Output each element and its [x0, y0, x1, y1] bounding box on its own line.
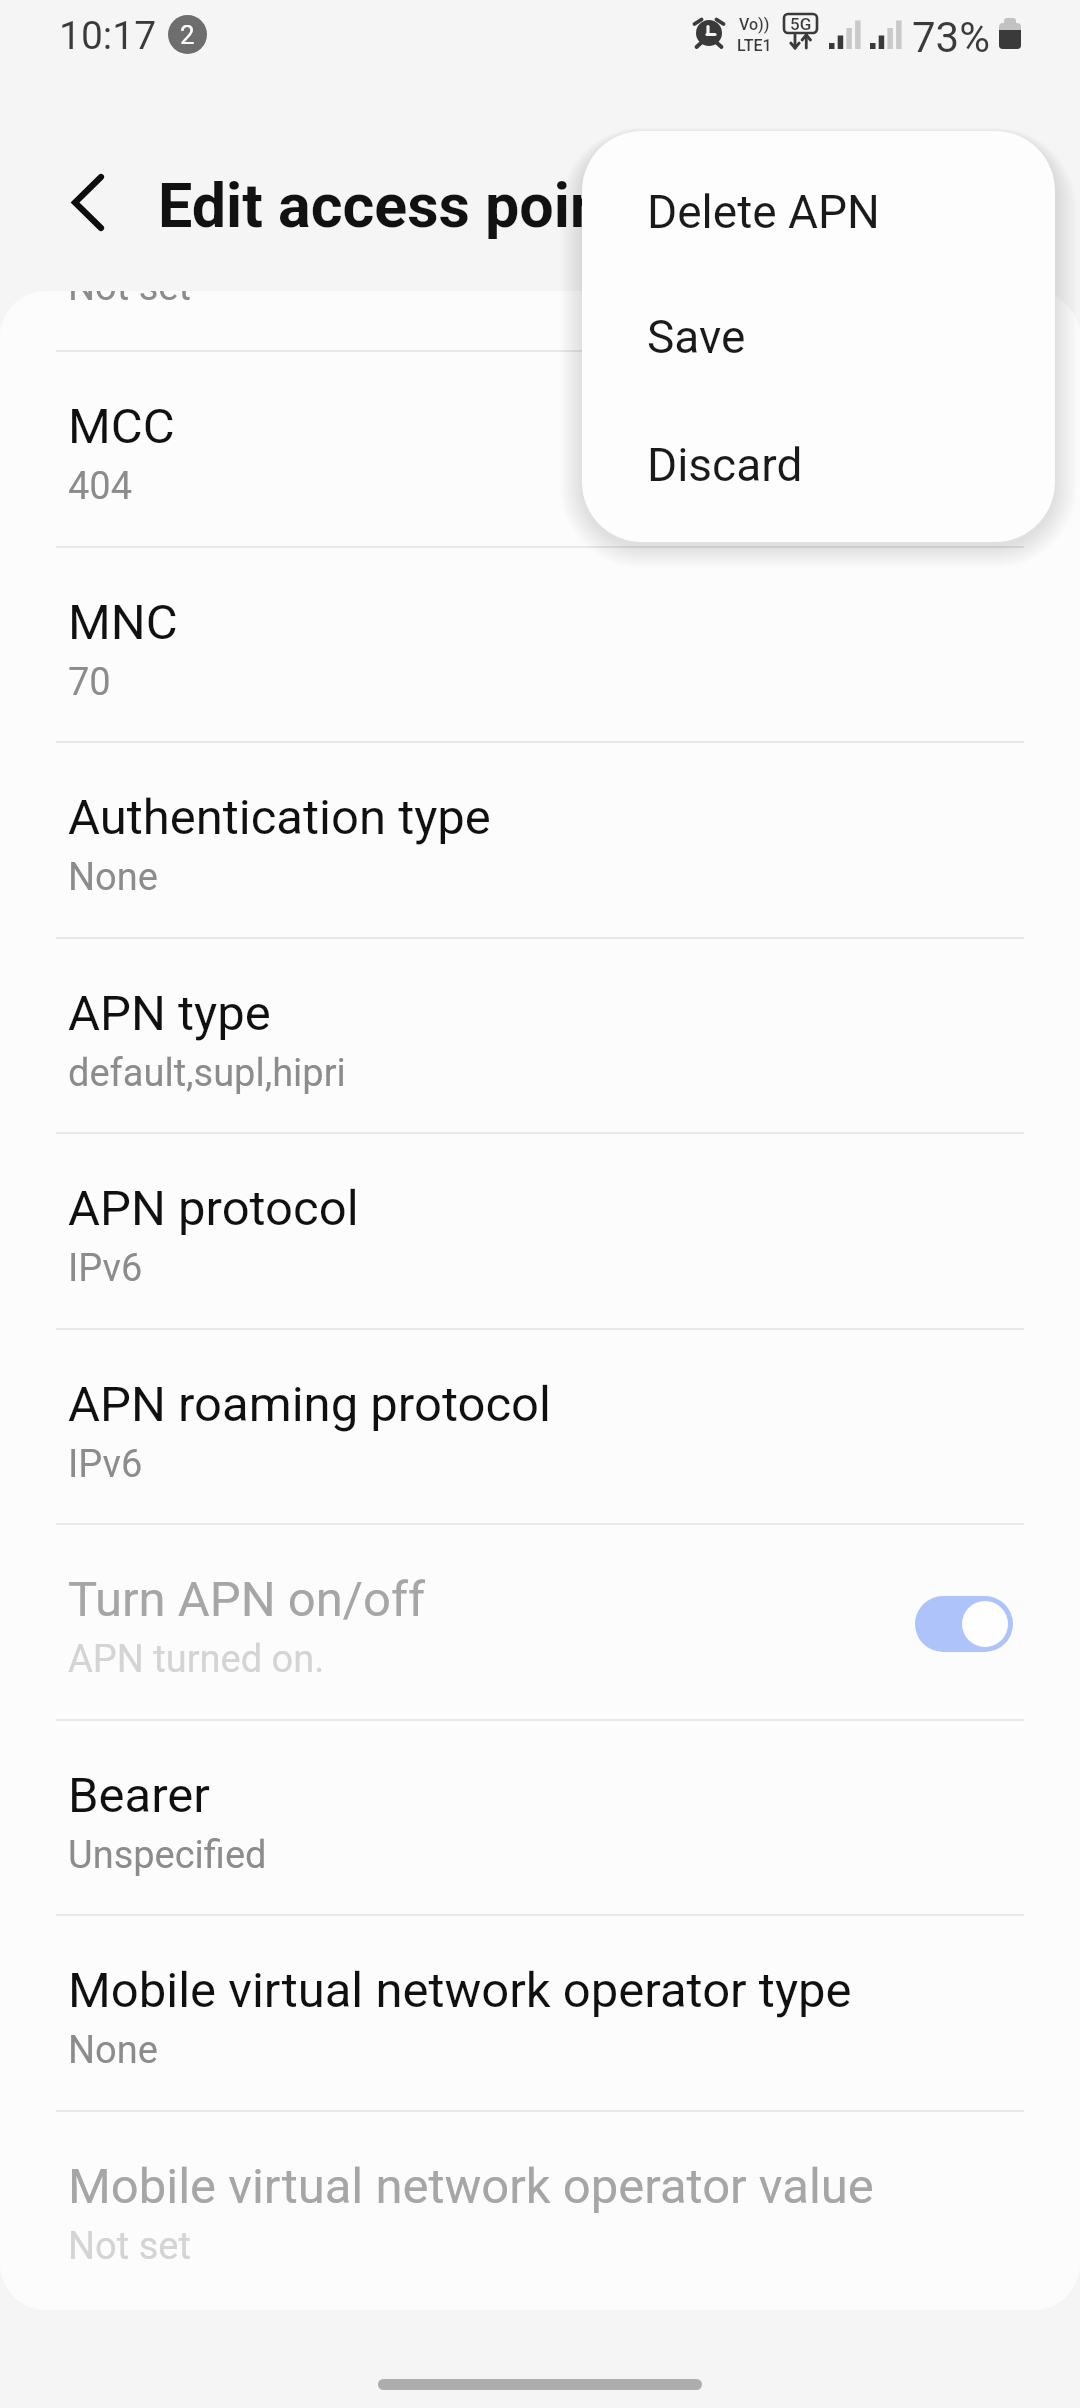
button[interactable]: Delete APN	[582, 150, 1055, 274]
button[interactable]: Bearer	[0, 1719, 1080, 1915]
staticText: 70	[68, 660, 111, 705]
staticText: Not set	[68, 291, 191, 310]
staticText: LTE1	[737, 36, 772, 55]
staticText: Unspecified	[68, 1833, 267, 1878]
button[interactable]: Discard	[582, 403, 1055, 527]
button[interactable]: Navigate up	[38, 153, 138, 253]
staticText: Authentication type	[68, 789, 491, 846]
staticText: None	[68, 855, 158, 900]
staticText: Edit access point	[158, 170, 625, 241]
staticText: APN protocol	[68, 1180, 359, 1237]
button[interactable]: APN type	[0, 937, 1080, 1133]
staticText: Not set	[68, 2224, 191, 2269]
staticText: APN type	[68, 985, 271, 1042]
button[interactable]: MNC	[0, 546, 1080, 742]
staticText: 73%	[912, 13, 990, 62]
staticText: Turn APN on/off	[68, 1571, 426, 1628]
staticText: Discard	[647, 438, 803, 492]
staticText: Save	[647, 310, 746, 364]
staticText: 10:17	[59, 13, 157, 59]
staticText: None	[68, 2028, 158, 2073]
staticText: 5G	[790, 14, 812, 33]
staticText: Mobile virtual network operator type	[68, 1962, 852, 2019]
button[interactable]: Authentication type	[0, 741, 1080, 937]
staticText: APN turned on.	[68, 1637, 325, 1682]
staticText: MCC	[68, 398, 175, 455]
staticText: Bearer	[68, 1767, 210, 1824]
staticText: Delete APN	[647, 185, 880, 239]
button[interactable]: Save	[582, 275, 1055, 399]
staticText: 2	[180, 20, 195, 50]
staticText: MNC	[68, 594, 178, 651]
button[interactable]: Mobile virtual network operator type	[0, 1914, 1080, 2110]
staticText: Mobile virtual network operator value	[68, 2158, 874, 2215]
staticText: IPv6	[68, 1442, 143, 1487]
button[interactable]: Turn APN on/off	[915, 1596, 1013, 1652]
button[interactable]: MCC	[0, 350, 1080, 546]
staticText: APN roaming protocol	[68, 1376, 551, 1433]
staticText: Vo))	[739, 15, 770, 34]
staticText: 404	[68, 464, 133, 509]
button[interactable]: APN protocol	[0, 1132, 1080, 1328]
button[interactable]: Mobile virtual network operator value	[0, 2110, 1080, 2306]
button[interactable]: Turn APN on/off	[0, 1523, 1080, 1719]
button[interactable]: APN roaming protocol	[0, 1328, 1080, 1524]
staticText: default,supl,hipri	[68, 1051, 346, 1096]
staticText: IPv6	[68, 1246, 143, 1291]
